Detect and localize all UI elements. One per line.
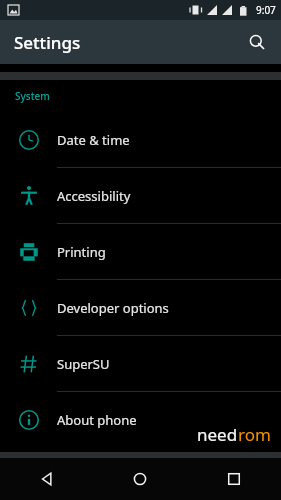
staticText: System [15, 89, 50, 103]
staticText: 9:07 [256, 3, 276, 17]
staticText: Developer options [57, 299, 169, 317]
staticText: Date & time [57, 131, 130, 149]
staticText: need [197, 423, 238, 446]
button[interactable]: About phone [0, 392, 281, 448]
staticText: Settings [14, 31, 81, 54]
button[interactable]: Recent apps [187, 458, 281, 500]
button[interactable]: Developer options [0, 280, 281, 336]
button[interactable]: Accessibility [0, 168, 281, 224]
button[interactable]: Printing [0, 224, 281, 280]
staticText: About phone [57, 411, 137, 429]
button[interactable]: Back [0, 458, 93, 500]
button[interactable]: Search [239, 24, 275, 60]
staticText: SuperSU [57, 355, 110, 373]
button[interactable]: Home [93, 458, 187, 500]
button[interactable]: SuperSU [0, 336, 281, 392]
staticText: Printing [57, 243, 106, 261]
staticText: Accessibility [57, 187, 131, 205]
staticText: rom [238, 423, 271, 446]
button[interactable]: Date & time [0, 112, 281, 168]
